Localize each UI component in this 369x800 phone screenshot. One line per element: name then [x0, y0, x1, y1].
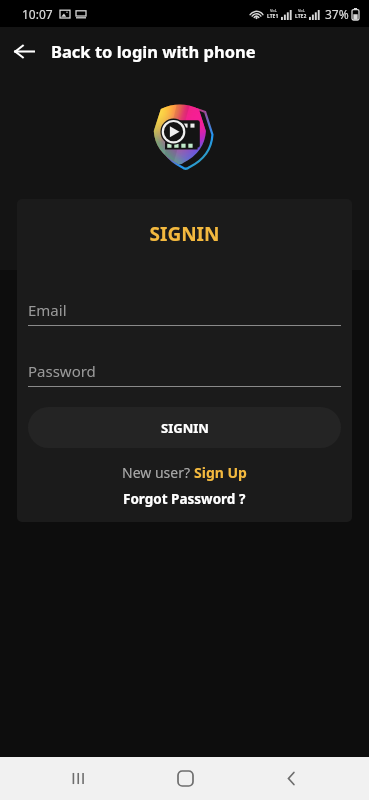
staticText: 37%	[325, 6, 349, 22]
staticText: Back to login with phone	[51, 40, 256, 62]
button[interactable]: Back	[263, 757, 319, 800]
button[interactable]: Back	[0, 27, 48, 75]
button[interactable]: Forgot Password ?	[123, 490, 246, 508]
staticText: SIGNIN	[161, 419, 209, 437]
staticText: SIGNIN	[17, 221, 352, 247]
button[interactable]: Email	[28, 300, 341, 326]
button[interactable]: New user?	[122, 463, 247, 482]
staticText: LTE2	[295, 13, 307, 20]
staticText: VoL	[270, 8, 277, 13]
staticText: LTE1	[267, 13, 279, 20]
staticText: 10:07	[22, 6, 53, 22]
staticText: Email	[28, 300, 67, 320]
staticText: Forgot Password ?	[123, 490, 246, 508]
staticText: VoL	[298, 8, 305, 13]
button[interactable]: Recents	[50, 757, 106, 800]
staticText: Sign Up	[194, 463, 247, 482]
button[interactable]: Password	[28, 361, 341, 387]
staticText: Password	[28, 361, 96, 381]
staticText: New user?	[122, 463, 194, 482]
button[interactable]: SIGNIN	[28, 407, 341, 448]
button[interactable]: Home	[157, 757, 213, 800]
